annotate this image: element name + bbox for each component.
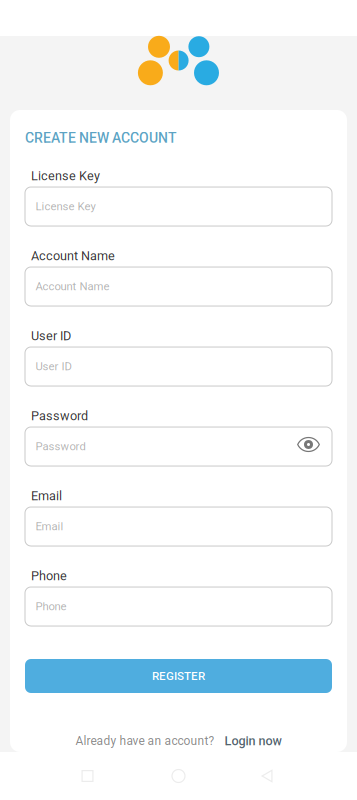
staticText: Login now <box>224 734 281 748</box>
staticText: Password <box>31 409 88 423</box>
staticText: License Key <box>31 169 100 183</box>
staticText: Phone <box>35 600 66 613</box>
staticText: Account Name <box>35 280 109 293</box>
button[interactable]: Login now <box>224 734 281 748</box>
button[interactable]: REGISTER <box>25 659 332 693</box>
staticText: REGISTER <box>152 669 205 683</box>
staticText: License Key <box>35 200 95 213</box>
staticText: Already have an account? <box>75 734 214 748</box>
staticText: Email <box>31 489 62 503</box>
staticText: User ID <box>31 329 71 343</box>
staticText: Account Name <box>31 249 115 263</box>
staticText: Email <box>35 520 63 533</box>
staticText: Password <box>35 440 85 453</box>
staticText: Phone <box>31 569 67 583</box>
staticText: User ID <box>35 360 71 373</box>
staticText: CREATE NEW ACCOUNT <box>25 130 177 146</box>
